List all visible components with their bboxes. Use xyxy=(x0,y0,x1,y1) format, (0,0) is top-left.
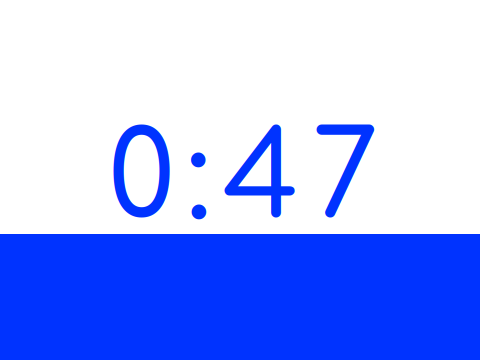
staticText: 0:47 xyxy=(107,113,378,245)
